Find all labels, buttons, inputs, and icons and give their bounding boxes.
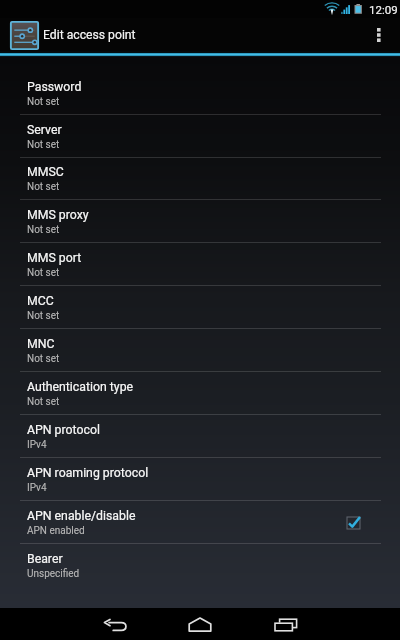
button[interactable]: APN protocol — [0, 415, 400, 458]
button[interactable]: Up — [10, 21, 39, 50]
staticText: Password — [27, 80, 82, 94]
staticText: Unspecified — [27, 568, 80, 580]
button[interactable]: Home — [165, 608, 235, 640]
button[interactable]: APN roaming protocol — [0, 458, 400, 501]
button[interactable]: Recent apps — [250, 608, 320, 640]
button[interactable]: Password — [0, 72, 400, 115]
staticText: Server — [27, 123, 62, 137]
button[interactable]: MNC — [0, 329, 400, 372]
staticText: APN enable/disable — [27, 509, 136, 523]
staticText: MCC — [27, 294, 54, 308]
staticText: Not set — [27, 224, 60, 236]
staticText: Not set — [27, 353, 60, 365]
staticText: Not set — [27, 96, 60, 108]
staticText: MNC — [27, 337, 55, 351]
button[interactable]: Back — [80, 608, 150, 640]
button[interactable]: More options — [362, 18, 400, 52]
staticText: Not set — [27, 396, 60, 408]
button[interactable]: MMS proxy — [0, 200, 400, 243]
staticText: IPv4 — [27, 482, 47, 494]
staticText: Not set — [27, 181, 60, 193]
button[interactable]: MMSC — [0, 157, 400, 200]
button[interactable]: MCC — [0, 286, 400, 329]
staticText: APN roaming protocol — [27, 466, 149, 480]
staticText: IPv4 — [27, 439, 47, 451]
button[interactable]: MMS port — [0, 243, 400, 286]
button[interactable]: Server — [0, 115, 400, 158]
button[interactable]: APN enable/disable — [0, 501, 400, 544]
staticText: 12:09 — [369, 3, 398, 16]
staticText: Edit access point — [43, 28, 136, 42]
staticText: Not set — [27, 310, 60, 322]
staticText: APN enabled — [27, 525, 85, 537]
staticText: MMSC — [27, 165, 64, 179]
staticText: Authentication type — [27, 380, 134, 394]
staticText: MMS port — [27, 251, 82, 265]
staticText: MMS proxy — [27, 208, 89, 222]
staticText: Not set — [27, 267, 60, 279]
button[interactable]: Bearer — [0, 544, 400, 587]
staticText: APN protocol — [27, 423, 100, 437]
staticText: Bearer — [27, 552, 63, 566]
button[interactable]: Authentication type — [0, 372, 400, 415]
staticText: Not set — [27, 139, 60, 151]
